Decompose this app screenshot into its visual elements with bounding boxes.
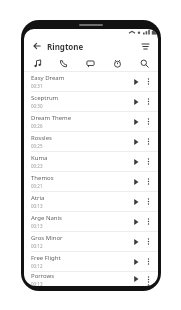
staticText: 00:25: [31, 143, 43, 149]
button[interactable]: Play Easy Dream: [129, 72, 143, 91]
staticText: 00:13: [31, 203, 43, 209]
button[interactable]: More options: [143, 172, 154, 191]
button[interactable]: Dream Theme: [24, 112, 158, 131]
button[interactable]: Music: [24, 55, 50, 71]
staticText: Themos: [31, 174, 54, 182]
button[interactable]: Play Atria: [129, 192, 143, 211]
button[interactable]: More options: [143, 232, 154, 251]
button[interactable]: More options: [143, 192, 154, 211]
button[interactable]: Play Porrows: [129, 272, 143, 286]
button[interactable]: More options: [143, 112, 154, 131]
staticText: Rossles: [31, 134, 52, 142]
button[interactable]: Easy Dream: [24, 72, 158, 91]
button[interactable]: Search: [131, 55, 158, 71]
button[interactable]: Sort: [138, 39, 152, 53]
button[interactable]: Play Sceptrum: [129, 92, 143, 111]
staticText: Gros Minor: [31, 234, 63, 242]
button[interactable]: Atria: [24, 192, 158, 211]
staticText: Ringtone: [47, 41, 84, 52]
button[interactable]: More options: [143, 272, 154, 286]
button[interactable]: Play Kuma: [129, 152, 143, 171]
button[interactable]: Kuma: [24, 152, 158, 171]
button[interactable]: Gros Minor: [24, 232, 158, 251]
button[interactable]: More options: [143, 72, 154, 91]
button[interactable]: Play Gros Minor: [129, 232, 143, 251]
button[interactable]: Porrows: [24, 272, 158, 286]
staticText: Sceptrum: [31, 94, 59, 102]
button[interactable]: Free Flight: [24, 252, 158, 271]
button[interactable]: Messages: [77, 55, 104, 71]
staticText: 00:31: [31, 83, 43, 89]
staticText: Arge Nanis: [31, 214, 62, 222]
staticText: Kuma: [31, 154, 48, 162]
button[interactable]: Back: [30, 39, 44, 53]
button[interactable]: Sceptrum: [24, 92, 158, 111]
staticText: Easy Dream: [31, 74, 65, 82]
staticText: 00:23: [31, 163, 43, 169]
button[interactable]: Play Themos: [129, 172, 143, 191]
button[interactable]: Play Free Flight: [129, 252, 143, 271]
staticText: 00:12: [31, 263, 43, 269]
button[interactable]: Arge Nanis: [24, 212, 158, 231]
staticText: Porrows: [31, 272, 55, 280]
button[interactable]: Phone: [50, 55, 77, 71]
button[interactable]: More options: [143, 212, 154, 231]
button[interactable]: More options: [143, 152, 154, 171]
button[interactable]: Alarm: [104, 55, 131, 71]
button[interactable]: Play Arge Nanis: [129, 212, 143, 231]
button[interactable]: Themos: [24, 172, 158, 191]
staticText: Free Flight: [31, 254, 61, 262]
button[interactable]: Rossles: [24, 132, 158, 151]
staticText: 00:30: [31, 103, 43, 109]
button[interactable]: Play Rossles: [129, 132, 143, 151]
staticText: 00:13: [31, 281, 43, 286]
staticText: 00:21: [31, 183, 43, 189]
button[interactable]: More options: [143, 252, 154, 271]
staticText: Dream Theme: [31, 114, 72, 122]
staticText: 00:12: [31, 243, 43, 249]
button[interactable]: More options: [143, 92, 154, 111]
staticText: 00:26: [31, 123, 43, 129]
button[interactable]: More options: [143, 132, 154, 151]
staticText: 00:13: [31, 223, 43, 229]
button[interactable]: Play Dream Theme: [129, 112, 143, 131]
staticText: Atria: [31, 194, 45, 202]
